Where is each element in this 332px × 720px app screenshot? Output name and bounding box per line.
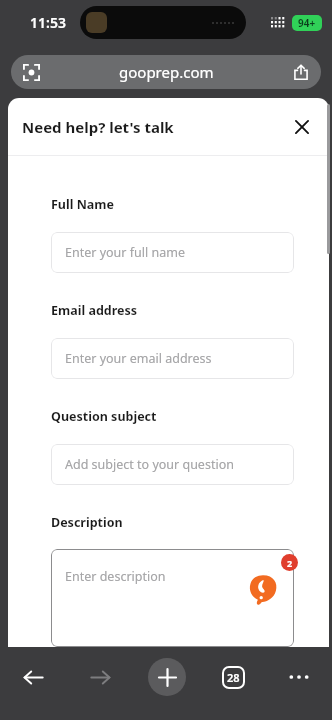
button[interactable]: Share: [291, 62, 311, 82]
staticText: Enter description: [65, 568, 166, 585]
staticText: 11:53: [30, 13, 66, 32]
staticText: 94+: [298, 16, 316, 30]
button[interactable]: Search with camera: [20, 61, 42, 83]
staticText: 2: [287, 557, 293, 569]
staticText: Enter your full name: [65, 244, 185, 261]
button[interactable]: Enter description: [51, 549, 294, 647]
button[interactable]: Enter your email address: [51, 338, 294, 379]
staticText: Email address: [51, 302, 138, 319]
button[interactable]: New tab: [134, 655, 200, 699]
staticText: 28: [227, 670, 240, 685]
staticText: gooprep.com: [119, 62, 214, 82]
staticText: Add subject to your question: [65, 456, 234, 473]
staticText: Full Name: [51, 196, 114, 213]
button[interactable]: Tabs: 28: [200, 655, 266, 699]
button[interactable]: More options: [266, 655, 332, 699]
staticText: Question subject: [51, 408, 157, 425]
staticText: Enter your email address: [65, 350, 212, 367]
button[interactable]: Back: [0, 655, 67, 699]
button[interactable]: Open chat: [236, 562, 290, 616]
button[interactable]: Add subject to your question: [51, 444, 294, 485]
button[interactable]: Close: [287, 112, 317, 142]
button[interactable]: Forward: [67, 655, 134, 699]
staticText: Need help? let's talk: [22, 117, 174, 137]
button[interactable]: Search with camera: [11, 55, 321, 89]
button[interactable]: Enter your full name: [51, 232, 294, 273]
staticText: Description: [51, 514, 123, 531]
